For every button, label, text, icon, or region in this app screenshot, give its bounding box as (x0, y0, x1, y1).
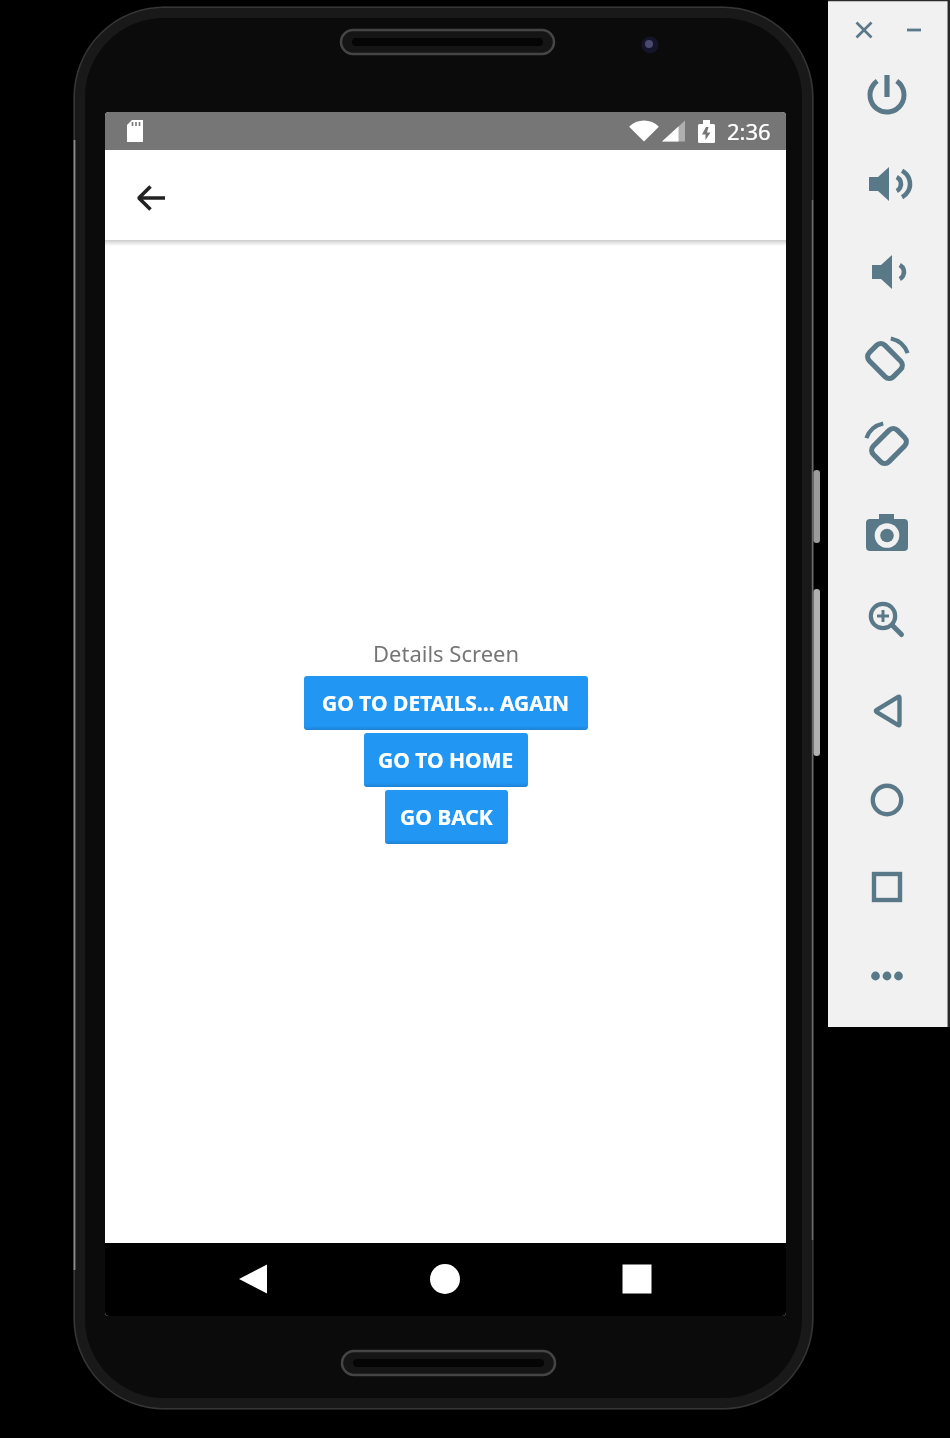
button[interactable] (863, 336, 911, 384)
button[interactable] (896, 12, 932, 48)
button[interactable] (239, 1264, 269, 1294)
staticText: 2:36 (727, 116, 771, 146)
staticText: GO TO DETAILS... AGAIN (322, 689, 570, 718)
button[interactable]: GO TO DETAILS... AGAIN (304, 676, 588, 730)
staticText: Details Screen (373, 638, 520, 668)
staticText: GO TO HOME (378, 746, 514, 775)
button[interactable] (863, 421, 911, 469)
button[interactable] (132, 178, 172, 218)
button[interactable] (863, 596, 911, 644)
button[interactable] (863, 776, 911, 824)
button[interactable]: GO TO HOME (364, 733, 528, 787)
button[interactable] (863, 511, 911, 559)
button[interactable] (622, 1264, 652, 1294)
button[interactable] (863, 687, 911, 735)
button[interactable] (863, 952, 911, 1000)
button[interactable] (846, 12, 882, 48)
staticText: GO BACK (400, 803, 493, 832)
button[interactable] (863, 71, 911, 119)
button[interactable] (863, 248, 911, 296)
button[interactable] (863, 160, 911, 208)
button[interactable]: GO BACK (385, 790, 508, 844)
button[interactable] (863, 864, 911, 912)
button[interactable] (430, 1264, 460, 1294)
